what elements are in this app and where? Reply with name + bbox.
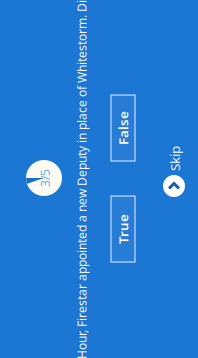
staticText: True <box>34 194 64 212</box>
button[interactable]: False <box>117 191 183 215</box>
button[interactable]: Skip <box>81 243 133 267</box>
staticText: In The Darkest Hour, Firestar appointed … <box>0 154 198 170</box>
staticText: Skip <box>107 246 132 264</box>
staticText: False <box>133 194 167 212</box>
button[interactable]: True <box>16 191 82 215</box>
